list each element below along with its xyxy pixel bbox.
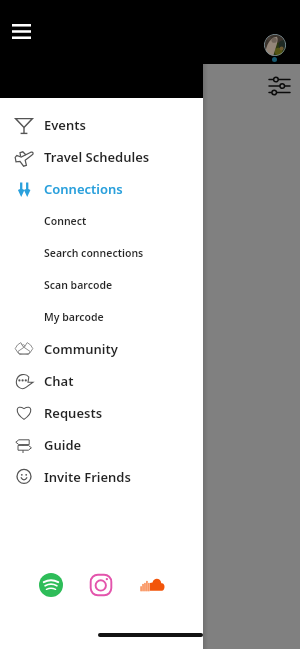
button[interactable]: Events [0,109,203,141]
button[interactable]: Spotify [39,573,63,597]
button[interactable]: Instagram [89,573,113,597]
staticText: Community [44,340,118,358]
staticText: Connections [44,180,123,198]
button[interactable]: My barcode [0,301,203,333]
button[interactable]: Community [0,333,203,365]
staticText: My barcode [44,310,104,324]
staticText: Travel Schedules [44,148,150,166]
button[interactable]: Open navigation drawer [12,24,31,39]
button[interactable]: Requests [0,397,203,429]
button[interactable]: Scan barcode [0,269,203,301]
staticText: Events [44,116,86,134]
staticText: Scan barcode [44,278,113,292]
button[interactable]: SoundCloud [139,572,165,596]
staticText: Chat [44,372,74,390]
staticText: Guide [44,436,82,454]
staticText: Connect [44,214,87,228]
button[interactable]: Guide [0,429,203,461]
button[interactable]: Invite Friends [0,461,203,493]
staticText: Search connections [44,246,144,260]
button[interactable]: Travel Schedules [0,141,203,173]
button[interactable]: Connections [0,173,203,205]
button[interactable]: Connect [0,205,203,237]
button[interactable]: Profile picture [264,34,286,56]
button[interactable]: Search connections [0,237,203,269]
staticText: Invite Friends [44,468,131,486]
button[interactable]: Chat [0,365,203,397]
staticText: Requests [44,404,103,422]
button[interactable]: Filters [269,77,290,95]
